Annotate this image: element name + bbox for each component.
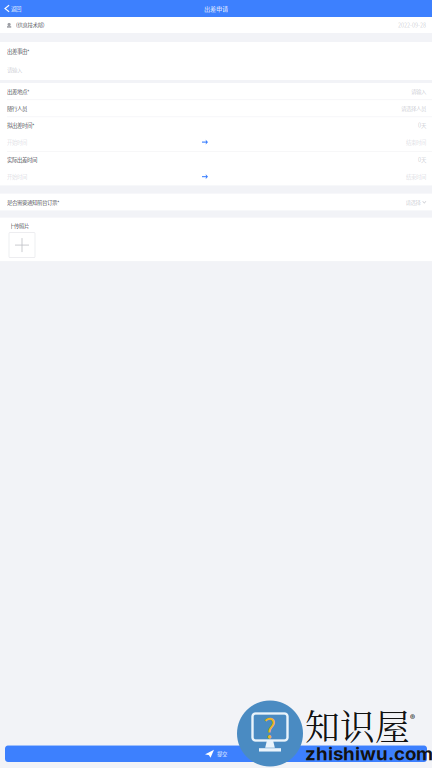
button[interactable]: 是否需要通知前台订票*	[0, 194, 432, 211]
staticText: 是否需要通知前台订票*	[7, 198, 60, 206]
button[interactable]: 提交	[5, 745, 427, 762]
staticText: 开始时间	[7, 138, 27, 146]
staticText: 结束时间	[406, 173, 426, 180]
staticText: 随行人员	[7, 104, 27, 112]
staticText: 0天	[418, 156, 426, 164]
staticText: （信息技术部）	[13, 21, 48, 29]
staticText: 知识屋	[305, 700, 410, 750]
staticText: 请输入	[7, 66, 22, 74]
staticText: 实际出差时间	[7, 156, 37, 164]
staticText: 上传照片	[9, 222, 29, 230]
button[interactable]: 出差地点*	[0, 83, 432, 99]
staticText: 出差申请	[204, 4, 228, 13]
staticText: 提交	[217, 750, 227, 758]
staticText: 拟出差时间*	[7, 121, 35, 129]
staticText: 2022-09-28	[398, 21, 426, 29]
staticText: 请选择人员	[401, 104, 426, 112]
staticText: 出差地点*	[7, 87, 30, 95]
staticText: 请选择	[406, 198, 421, 206]
staticText: 开始时间	[7, 173, 27, 180]
staticText: 0天	[418, 121, 426, 129]
staticText: 请输入	[411, 87, 426, 95]
staticText: zhishiwu.com	[305, 742, 432, 765]
staticText: ®	[410, 710, 415, 726]
staticText: ?	[263, 708, 276, 746]
button[interactable]: 随行人员	[0, 100, 432, 116]
button[interactable]: 上传照片	[9, 233, 35, 258]
staticText: 返回	[11, 4, 21, 12]
staticText: 出差事由*	[7, 47, 30, 55]
staticText: 结束时间	[406, 138, 426, 146]
button[interactable]: 返回	[0, 0, 25, 17]
